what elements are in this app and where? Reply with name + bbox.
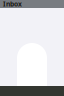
staticText: Inbox	[3, 0, 22, 8]
